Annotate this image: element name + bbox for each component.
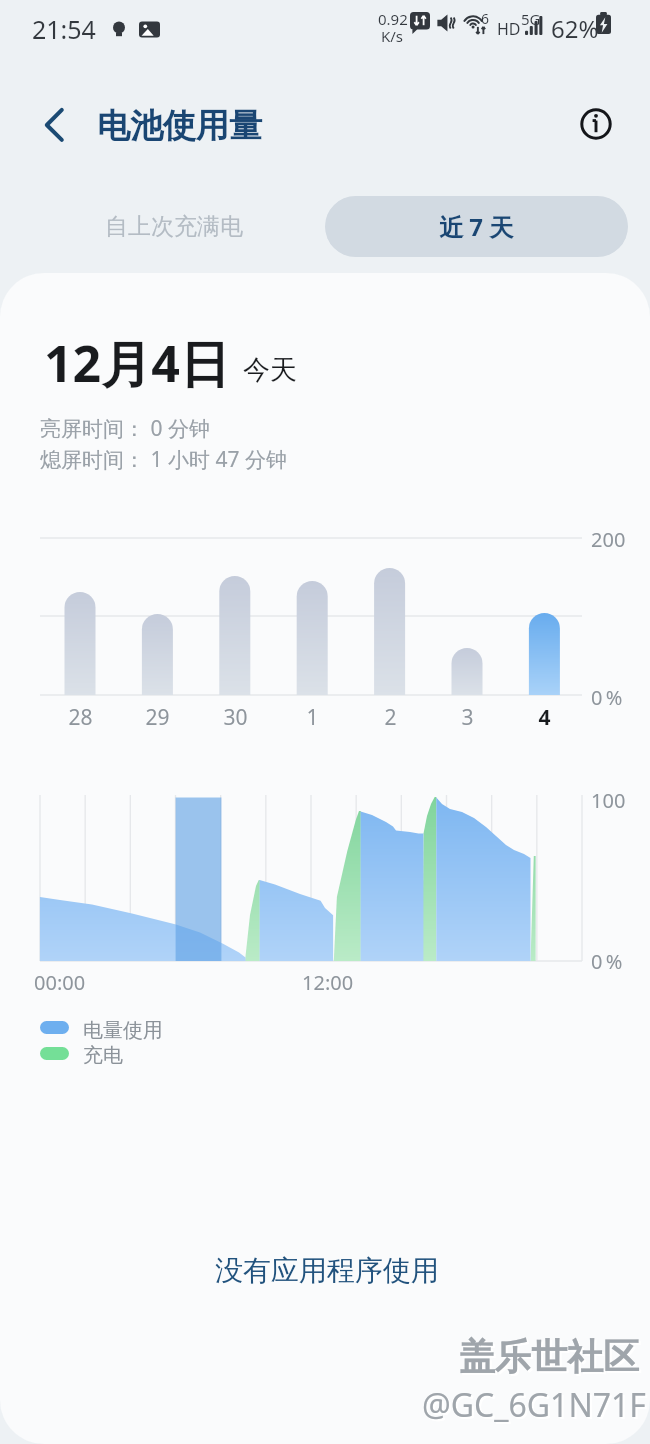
button[interactable]: 自上次充满电 — [22, 196, 325, 257]
staticText: 21:54 — [32, 12, 96, 46]
staticText: 0 % — [591, 684, 623, 711]
staticText: 近 7 天 — [439, 210, 514, 243]
staticText: HD — [497, 18, 521, 40]
staticText: 12月4日 — [44, 329, 230, 397]
staticText: 0 % — [591, 948, 623, 975]
staticText: 30 — [223, 703, 248, 732]
staticText: 00:00 — [34, 969, 86, 996]
staticText: 充电 — [83, 1043, 123, 1068]
staticText: 0.92 — [378, 9, 408, 29]
staticText: 100 — [591, 787, 626, 814]
staticText: 6 — [481, 9, 490, 28]
staticText: 200 — [591, 526, 626, 553]
staticText: 28 — [68, 703, 93, 732]
staticText: 12:00 — [302, 969, 354, 996]
staticText: 5G — [521, 9, 541, 29]
staticText: 盖乐世社区 — [459, 1334, 639, 1379]
staticText: 电量使用 — [83, 1018, 163, 1043]
staticText: 1 — [306, 703, 319, 732]
staticText: 没有应用程序使用 — [2, 1253, 650, 1288]
staticText: K/s — [381, 26, 404, 46]
staticText: 熄屏时间： 1 小时 47 分钟 — [40, 445, 287, 474]
staticText: 亮屏时间： 0 分钟 — [40, 414, 210, 443]
button[interactable]: 近 7 天 — [325, 196, 628, 257]
staticText: 4 — [538, 703, 551, 732]
staticText: @GC_6G1N71F — [424, 1385, 648, 1429]
button[interactable]: Back — [29, 101, 77, 149]
staticText: 3 — [461, 703, 474, 732]
staticText: 2 — [384, 703, 397, 732]
staticText: 62% — [551, 12, 599, 45]
staticText: 今天 — [243, 353, 297, 387]
staticText: 电池使用量 — [97, 105, 262, 147]
button[interactable]: Information — [573, 101, 619, 147]
staticText: 29 — [145, 703, 170, 732]
staticText: 自上次充满电 — [105, 212, 243, 241]
staticText: @GC_6G1N71F — [422, 1383, 646, 1427]
staticText: 盖乐世社区 — [461, 1336, 641, 1381]
